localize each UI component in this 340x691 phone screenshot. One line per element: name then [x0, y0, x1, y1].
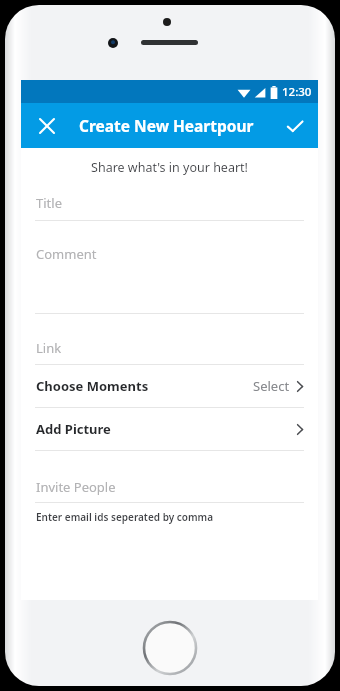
- staticText: Link: [36, 339, 62, 357]
- other: Home: [142, 620, 198, 676]
- button[interactable]: Confirm: [276, 107, 314, 145]
- staticText: Title: [36, 194, 62, 212]
- staticText: Create New Heartpour: [79, 115, 254, 136]
- staticText: Comment: [36, 245, 97, 263]
- button[interactable]: Invite People: [21, 470, 318, 503]
- staticText: Invite People: [36, 478, 116, 496]
- button[interactable]: Close: [28, 107, 66, 145]
- button[interactable]: Title: [21, 186, 318, 221]
- staticText: Share what's in your heart!: [91, 159, 248, 176]
- staticText: 12:30: [282, 84, 312, 100]
- button[interactable]: Link: [21, 331, 318, 365]
- button[interactable]: Add Picture: [21, 408, 318, 451]
- staticText: Add Picture: [36, 420, 111, 438]
- staticText: Select: [253, 377, 290, 395]
- staticText: Choose Moments: [36, 377, 149, 395]
- button[interactable]: Comment: [21, 237, 318, 314]
- staticText: Enter email ids seperated by comma: [36, 510, 214, 524]
- button[interactable]: Choose Moments: [21, 365, 318, 408]
